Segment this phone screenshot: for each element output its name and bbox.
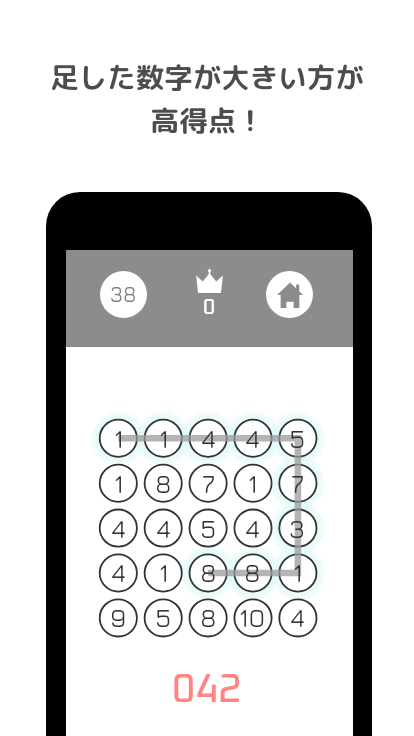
staticText: 7	[202, 468, 215, 499]
button[interactable]: 4	[100, 554, 137, 591]
staticText: 5	[155, 602, 172, 633]
button[interactable]: 38	[100, 271, 147, 318]
staticText: 5	[200, 513, 217, 544]
staticText: 4	[111, 557, 126, 588]
button[interactable]: 5	[279, 420, 316, 457]
staticText: 5	[289, 423, 306, 454]
button[interactable]: 1	[145, 420, 182, 457]
button[interactable]: 9	[100, 599, 137, 636]
button[interactable]: 4	[234, 420, 271, 457]
button[interactable]: 1	[100, 465, 137, 502]
staticText: 4	[245, 513, 260, 544]
button[interactable]: 4	[234, 510, 271, 547]
button[interactable]: 1	[279, 554, 316, 591]
staticText: 1	[159, 557, 169, 588]
staticText: 1	[159, 423, 169, 454]
button[interactable]: 1	[100, 420, 137, 457]
button[interactable]: 8	[190, 599, 227, 636]
button[interactable]: 4	[279, 599, 316, 636]
staticText: 4	[156, 513, 171, 544]
staticText: 9	[110, 602, 127, 633]
button[interactable]: 8	[234, 554, 271, 591]
staticText: 3	[289, 513, 306, 544]
button[interactable]: 8	[190, 554, 227, 591]
button[interactable]: High score	[192, 268, 226, 318]
button[interactable]: 10	[234, 599, 271, 636]
staticText: 1	[114, 468, 124, 499]
staticText: 4	[245, 423, 260, 454]
button[interactable]: Home	[266, 271, 313, 318]
staticText: 1	[114, 423, 124, 454]
button[interactable]: 1	[234, 465, 271, 502]
button[interactable]: 8	[145, 465, 182, 502]
button[interactable]: 5	[190, 510, 227, 547]
staticText: 1	[293, 557, 303, 588]
staticText: 0	[203, 297, 216, 318]
staticText: 1	[248, 468, 258, 499]
staticText: 4	[111, 513, 126, 544]
staticText: 10	[239, 602, 266, 633]
staticText: 8	[155, 468, 172, 499]
button[interactable]: 1	[145, 554, 182, 591]
staticText: 38	[110, 282, 137, 307]
staticText: 7	[291, 468, 304, 499]
button[interactable]: 4	[190, 420, 227, 457]
button[interactable]: 7	[190, 465, 227, 502]
staticText: 8	[200, 602, 217, 633]
staticText: 4	[201, 423, 216, 454]
button[interactable]: 5	[145, 599, 182, 636]
button[interactable]: 3	[279, 510, 316, 547]
button[interactable]: 4	[100, 510, 137, 547]
staticText: 042	[172, 670, 242, 710]
button[interactable]: 7	[279, 465, 316, 502]
staticText: 8	[200, 557, 217, 588]
staticText: 足した数字が大きい方が	[50, 57, 364, 97]
button[interactable]: 4	[145, 510, 182, 547]
staticText: 4	[290, 602, 305, 633]
staticText: 高得点！	[150, 100, 265, 140]
staticText: 8	[244, 557, 261, 588]
